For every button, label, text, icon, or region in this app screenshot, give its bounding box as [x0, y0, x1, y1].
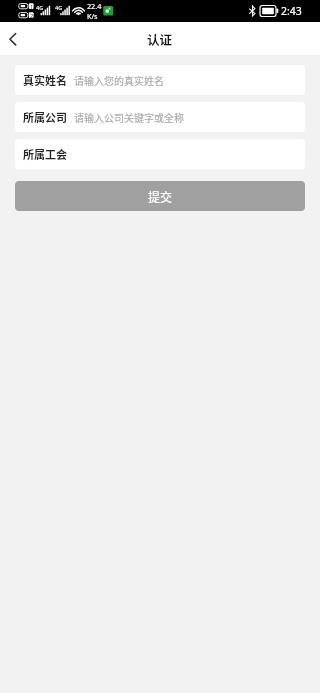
- staticText: 请输入公司关键字或全称: [74, 110, 184, 124]
- staticText: 所属工会: [23, 146, 67, 162]
- button[interactable]: 所属工会: [15, 139, 305, 169]
- staticText: 提交: [148, 188, 173, 205]
- staticText: K/s: [87, 11, 98, 21]
- staticText: 2: [30, 12, 34, 19]
- staticText: 1: [30, 3, 34, 10]
- staticText: 4G: [36, 4, 44, 11]
- button[interactable]: 提交: [15, 181, 305, 211]
- staticText: 4G: [55, 4, 63, 11]
- staticText: 所属公司: [23, 109, 67, 125]
- staticText: 22.4: [87, 1, 102, 11]
- staticText: 2:43: [281, 4, 302, 18]
- staticText: 请输入您的真实姓名: [74, 73, 164, 87]
- button[interactable]: 所属公司: [15, 102, 305, 132]
- staticText: 认证: [147, 30, 173, 48]
- button[interactable]: 真实姓名: [15, 65, 305, 95]
- button[interactable]: Back: [0, 22, 30, 55]
- staticText: 真实姓名: [23, 72, 67, 88]
